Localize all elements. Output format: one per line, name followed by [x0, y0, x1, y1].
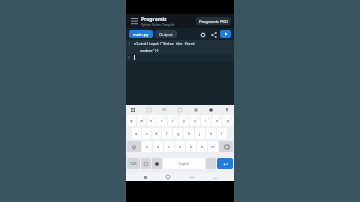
staticText: . [211, 161, 212, 166]
button[interactable]: Programiz PRO [196, 17, 231, 25]
button[interactable]: Clipboard [176, 106, 184, 114]
button[interactable]: Settings [192, 106, 200, 114]
button[interactable]: Backspace [219, 141, 233, 152]
staticText: 2 [143, 116, 145, 119]
staticText: n1=int(input("Enter the first [134, 41, 195, 46]
staticText: 5 [175, 116, 177, 119]
button[interactable]: q [127, 115, 136, 126]
button[interactable]: b [186, 141, 196, 152]
button[interactable]: m [208, 141, 218, 152]
button[interactable]: . [206, 158, 216, 169]
staticText: j [199, 131, 201, 136]
staticText: GIF [162, 108, 167, 112]
staticText: y [183, 118, 186, 123]
button[interactable]: r [157, 115, 167, 126]
staticText: 1 [128, 41, 131, 46]
staticText: g [177, 131, 180, 136]
staticText: l [221, 131, 223, 136]
button[interactable]: o [212, 115, 222, 126]
staticText: e [150, 118, 153, 123]
button[interactable]: j [195, 128, 205, 139]
button[interactable]: n [197, 141, 207, 152]
button[interactable]: Apps [129, 106, 137, 114]
staticText: 2 [128, 55, 131, 60]
button[interactable]: Sticker [145, 106, 153, 114]
button[interactable]: Voice input [223, 106, 231, 114]
staticText: o [216, 118, 219, 123]
staticText: 1 [133, 116, 135, 119]
staticText: ?123 [130, 162, 137, 166]
staticText: m [211, 144, 215, 149]
button[interactable]: Emoji [141, 158, 151, 169]
button[interactable]: e [147, 115, 156, 126]
staticText: s [146, 131, 148, 136]
staticText: 0 [230, 116, 232, 119]
button[interactable]: v [175, 141, 185, 152]
staticText: 8 [208, 116, 210, 119]
staticText: 6 [186, 116, 188, 119]
staticText: v [179, 144, 182, 149]
button[interactable]: main.py [129, 30, 153, 38]
button[interactable]: Settings [198, 30, 207, 39]
button[interactable]: ?123 [127, 158, 140, 169]
button[interactable]: Enter [217, 158, 233, 169]
button[interactable]: k [206, 128, 216, 139]
staticText: k [210, 131, 213, 136]
staticText: 7 [197, 116, 199, 119]
button[interactable]: Back [188, 173, 196, 181]
button[interactable]: z [142, 141, 152, 152]
button[interactable]: u [190, 115, 200, 126]
button[interactable]: Hide keyboard [211, 173, 219, 181]
button[interactable]: d [152, 128, 161, 139]
staticText: English [179, 162, 190, 166]
staticText: number")) [140, 48, 159, 53]
staticText: 4 [164, 116, 166, 119]
staticText: h [188, 131, 191, 136]
button[interactable]: p [223, 115, 233, 126]
button[interactable]: w [137, 115, 146, 126]
staticText: w [140, 118, 144, 123]
staticText: c [168, 144, 170, 149]
staticText: x [157, 144, 160, 149]
staticText: 3 [153, 116, 155, 119]
button[interactable]: f [162, 128, 172, 139]
staticText: z [146, 144, 148, 149]
staticText: n [201, 144, 204, 149]
staticText: Programiz [141, 16, 167, 23]
button[interactable]: Recents [141, 173, 149, 181]
button[interactable]: x [153, 141, 163, 152]
button[interactable]: Shift [127, 141, 141, 152]
button[interactable]: y [179, 115, 189, 126]
button[interactable]: Theme [207, 106, 215, 114]
button[interactable]: a [132, 128, 141, 139]
staticText: Output [159, 32, 173, 37]
button[interactable]: c [164, 141, 174, 152]
button[interactable]: t [168, 115, 178, 126]
button[interactable]: Change language [152, 158, 162, 169]
staticText: Programiz PRO [199, 19, 228, 24]
staticText: a [135, 131, 138, 136]
staticText: u [194, 118, 197, 123]
button[interactable]: g [173, 128, 183, 139]
button[interactable]: l [217, 128, 227, 139]
staticText: p [227, 118, 230, 123]
button[interactable]: Space [163, 158, 205, 169]
button[interactable]: s [142, 128, 151, 139]
button[interactable]: Home [164, 173, 172, 181]
button[interactable]: Run [220, 30, 231, 38]
staticText: t [172, 118, 174, 123]
staticText: 9 [219, 116, 221, 119]
staticText: r [161, 118, 163, 123]
staticText: d [155, 131, 158, 136]
button[interactable]: GIF [160, 106, 168, 114]
staticText: f [166, 131, 168, 136]
button[interactable]: Output [155, 30, 177, 38]
staticText: b [190, 144, 193, 149]
button[interactable]: Menu [129, 16, 139, 26]
staticText: q [130, 118, 133, 123]
staticText: Python Online Compiler [141, 23, 175, 27]
button[interactable]: Share [209, 30, 218, 39]
staticText: main.py [133, 32, 149, 37]
button[interactable]: i [201, 115, 211, 126]
button[interactable]: h [184, 128, 194, 139]
